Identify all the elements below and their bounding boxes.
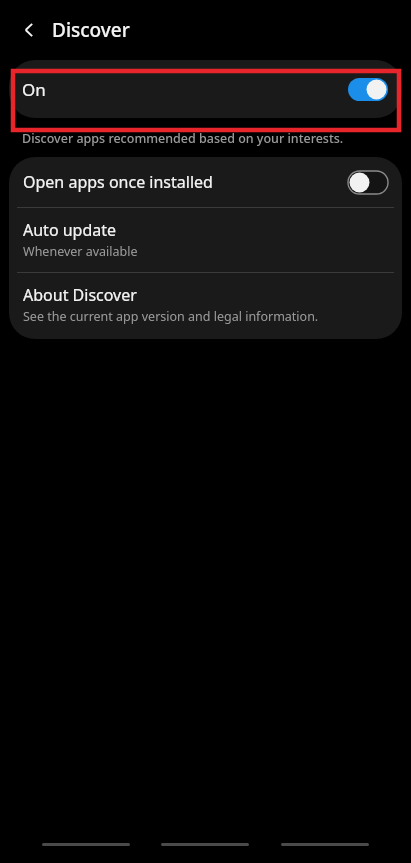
button[interactable]: Open apps once installed xyxy=(9,157,402,207)
button[interactable]: Auto update xyxy=(9,208,402,272)
staticText: On xyxy=(22,78,46,101)
button[interactable]: About Discover xyxy=(9,273,402,339)
button[interactable]: Navigation xyxy=(42,843,130,846)
staticText: Auto update xyxy=(23,219,117,241)
staticText: Discover xyxy=(52,17,130,43)
staticText: Open apps once installed xyxy=(23,171,348,193)
button[interactable]: Navigation xyxy=(161,843,249,846)
staticText: Whenever available xyxy=(23,243,138,260)
button[interactable]: Back xyxy=(14,14,46,46)
button[interactable]: Navigation xyxy=(281,843,369,846)
staticText: Discover apps recommended based on your … xyxy=(22,130,344,147)
button[interactable]: Switch on xyxy=(348,78,388,101)
button[interactable]: On xyxy=(9,60,402,118)
staticText: See the current app version and legal in… xyxy=(23,308,319,325)
staticText: About Discover xyxy=(23,284,137,306)
button[interactable]: Switch off xyxy=(348,171,388,194)
